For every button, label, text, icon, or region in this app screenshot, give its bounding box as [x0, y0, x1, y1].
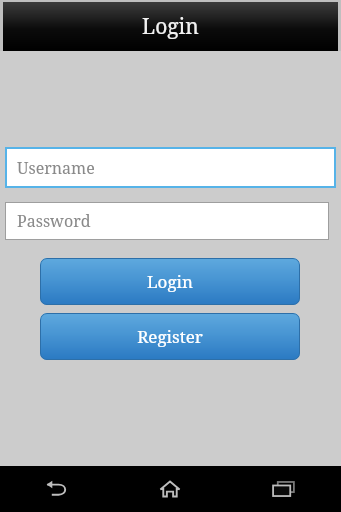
- button[interactable]: Register: [40, 313, 300, 360]
- staticText: Username: [17, 157, 95, 179]
- button[interactable]: Password: [5, 202, 329, 240]
- staticText: Register: [137, 325, 203, 348]
- button[interactable]: Recent apps: [227, 466, 341, 512]
- button[interactable]: Login: [40, 258, 300, 305]
- button[interactable]: Username: [5, 147, 336, 188]
- button[interactable]: Back: [0, 466, 113, 512]
- staticText: Password: [17, 210, 91, 232]
- staticText: Login: [147, 270, 193, 293]
- button[interactable]: Home: [113, 466, 227, 512]
- staticText: Login: [142, 12, 199, 41]
